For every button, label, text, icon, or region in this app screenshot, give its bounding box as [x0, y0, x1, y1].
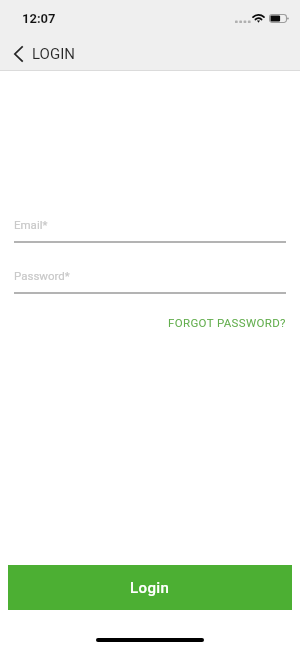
- other: Battery: [269, 14, 291, 23]
- other: Cellular signal: [235, 20, 249, 24]
- other: Wi-Fi: [252, 13, 265, 23]
- staticText: Email*: [14, 218, 48, 231]
- button[interactable]: Back: [0, 36, 30, 71]
- button[interactable]: Password*: [0, 260, 300, 301]
- staticText: Password*: [14, 269, 70, 282]
- button[interactable]: Login: [8, 565, 292, 610]
- button[interactable]: Email*: [0, 209, 300, 250]
- staticText: LOGIN: [32, 45, 75, 63]
- staticText: Login: [130, 579, 170, 597]
- button[interactable]: FORGOT PASSWORD?: [162, 308, 292, 337]
- staticText: 12:07: [22, 11, 56, 26]
